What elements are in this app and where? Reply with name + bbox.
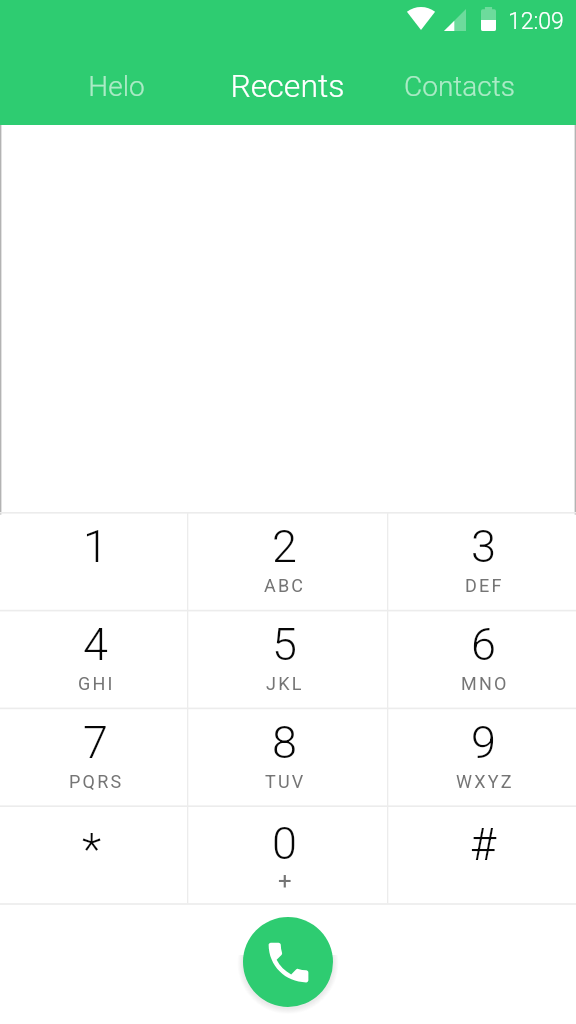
staticText: JKL [266,673,304,694]
button[interactable]: Call [243,917,333,1007]
staticText: 3 [471,520,496,573]
staticText: * [82,823,102,876]
staticText: 0 [272,817,297,870]
button[interactable]: 9 [387,708,576,806]
button[interactable]: 7 [0,708,187,806]
staticText: 7 [83,716,108,769]
staticText: DEF [465,575,504,596]
staticText: + [278,867,292,895]
staticText: MNO [461,673,509,694]
button[interactable]: 8 [187,708,387,806]
staticText: 12:09 [508,8,564,35]
button[interactable]: * [0,806,187,904]
button[interactable]: 4 [0,610,187,708]
button[interactable]: Recents [206,47,368,125]
staticText: ABC [264,575,306,596]
button[interactable]: 2 [187,512,387,610]
staticText: 6 [471,618,496,671]
staticText: WXYZ [456,771,514,792]
staticText: 1 [83,520,108,573]
staticText: GHI [78,673,115,694]
staticText: Recents [230,67,345,105]
staticText: 5 [272,618,297,671]
staticText: Contacts [404,70,515,103]
staticText: 8 [272,716,297,769]
button[interactable]: # [387,806,576,904]
button[interactable]: Contacts [355,47,563,125]
staticText: 9 [471,716,496,769]
button[interactable]: 3 [387,512,576,610]
button[interactable]: 0 [187,806,387,904]
button[interactable]: 6 [387,610,576,708]
staticText: Helo [88,70,145,103]
staticText: PQRS [69,771,124,792]
staticText: TUV [265,771,306,792]
staticText: 4 [83,618,108,671]
button[interactable]: 5 [187,610,387,708]
button[interactable]: 1 [0,512,187,610]
staticText: # [470,818,497,871]
button[interactable]: Helo [13,47,220,125]
staticText: 2 [272,520,297,573]
